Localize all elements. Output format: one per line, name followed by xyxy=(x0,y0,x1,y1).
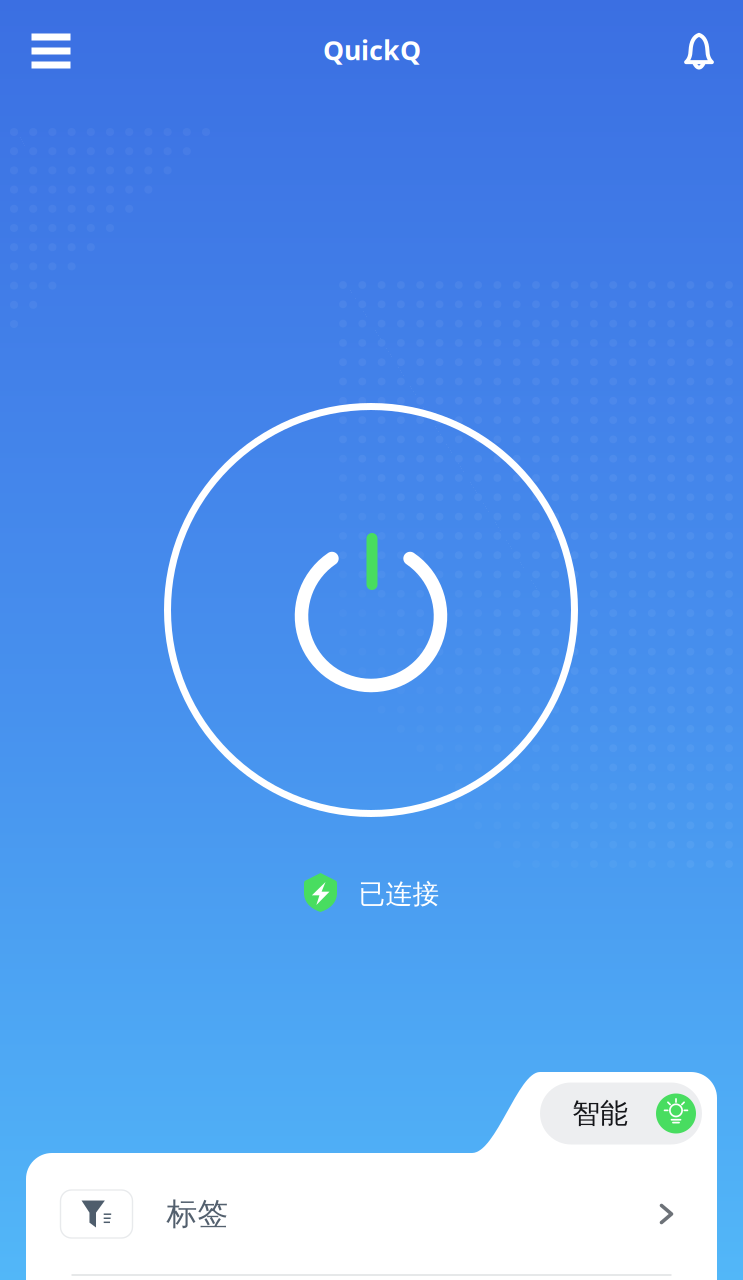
button[interactable]: Notifications xyxy=(665,16,733,87)
staticText: 智能 xyxy=(572,1096,628,1131)
staticText: 已连接 xyxy=(358,878,439,910)
staticText: 标签 xyxy=(166,1195,228,1233)
button[interactable]: Power xyxy=(164,403,578,817)
button[interactable]: 智能 xyxy=(540,1082,702,1144)
staticText: QuickQ xyxy=(323,32,421,68)
button[interactable]: Menu xyxy=(13,17,88,84)
button[interactable]: 标签 xyxy=(25,1166,716,1262)
